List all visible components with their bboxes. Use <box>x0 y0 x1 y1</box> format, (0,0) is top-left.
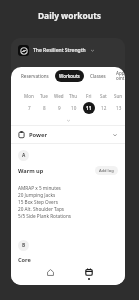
button[interactable]: Classes <box>86 70 110 82</box>
staticText: Warm up <box>18 167 44 175</box>
button[interactable]: Power <box>11 126 125 143</box>
staticText: Power <box>29 131 48 139</box>
staticText: 5/5 Side Plank Rotations <box>18 213 72 219</box>
staticText: B <box>22 242 26 249</box>
button[interactable]: Mon <box>21 93 36 114</box>
button[interactable]: The Resilient Strength <box>11 38 125 70</box>
staticText: 12 <box>101 105 107 111</box>
staticText: Wed <box>54 93 64 99</box>
button[interactable]: Appointments <box>112 67 125 85</box>
staticText: The Resilient Strength <box>33 47 86 54</box>
button[interactable]: Tue <box>36 93 51 114</box>
staticText: Sat <box>100 93 107 99</box>
staticText: 13 <box>116 105 122 111</box>
staticText: 15 Box Step Overs <box>18 199 58 205</box>
staticText: 8 <box>43 105 46 111</box>
staticText: Fri <box>86 93 92 99</box>
button[interactable]: Home <box>39 264 61 285</box>
staticText: Core <box>18 256 31 264</box>
staticText: 7 <box>28 105 31 111</box>
staticText: Reservations <box>21 73 49 79</box>
button[interactable]: Wed <box>51 93 66 114</box>
button[interactable]: Thu <box>66 93 81 114</box>
staticText: A <box>22 152 26 159</box>
button[interactable]: Sun <box>111 93 125 114</box>
staticText: 20 Alt. Shoulder Taps <box>18 206 65 212</box>
staticText: Sun <box>114 93 123 99</box>
staticText: Mon <box>24 93 34 99</box>
staticText: 10 <box>71 105 77 111</box>
staticText: 11 <box>86 105 92 111</box>
button[interactable]: Workouts <box>55 70 84 82</box>
staticText: Daily workouts <box>0 10 139 21</box>
staticText: 20 Jumping Jacks <box>18 192 56 198</box>
staticText: Appointments <box>116 70 125 82</box>
staticText: 9 <box>58 105 61 111</box>
button[interactable]: Reservations <box>17 70 53 82</box>
button[interactable]: Fri <box>81 93 96 114</box>
staticText: Tue <box>40 93 48 99</box>
staticText: Add log <box>99 168 114 173</box>
button[interactable]: Sat <box>96 93 111 114</box>
staticText: Thu <box>69 93 78 99</box>
staticText: Workouts <box>59 73 80 79</box>
button[interactable]: Add log <box>95 166 118 175</box>
staticText: Classes <box>90 73 106 79</box>
button[interactable]: Schedule <box>78 264 100 285</box>
staticText: AMRAP x 5 minutes <box>18 185 61 191</box>
